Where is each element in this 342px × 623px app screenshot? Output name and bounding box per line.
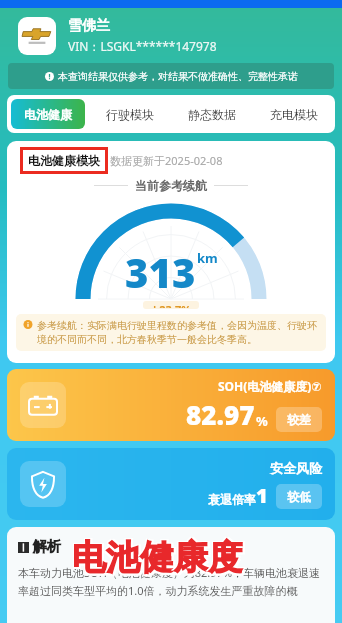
button[interactable]: 安全风险 [7,448,335,520]
staticText: 健 [140,536,174,579]
staticText: 解析 [33,538,61,556]
staticText: 池 [108,538,142,581]
staticText: 电 [71,535,105,578]
button[interactable]: SOH(电池健康度)⑦ [7,369,335,441]
staticText: ↓23.7% [150,302,192,308]
staticText: 静态数据 [188,107,236,122]
staticText: 健 [142,535,176,578]
staticText: 行驶模块 [106,107,154,122]
staticText: 池 [106,536,140,579]
staticText: 度 [210,538,244,581]
staticText: 康 [176,538,210,581]
staticText: km [197,249,218,267]
button[interactable]: 电池健康 [11,99,85,129]
staticText: 313 [125,245,196,299]
staticText: 较差 [287,412,311,427]
staticText: 康 [173,535,207,578]
button[interactable]: 充电模块 [257,99,331,129]
staticText: 度 [207,535,241,578]
staticText: 康 [174,536,208,579]
staticText: 82.97 [186,397,255,432]
staticText: 度 [210,535,244,578]
staticText: 康 [176,535,210,578]
staticText: 度 [208,536,242,579]
staticText: 数据更新于2025-02-08 [110,153,223,168]
staticText: 池 [108,535,142,578]
staticText: 电 [72,536,106,579]
staticText: 本车动力电池SOH（电池健康度）为82.97%，车辆电池衰退速率超过同类车型平均… [18,565,324,598]
staticText: 池 [105,538,139,581]
staticText: SOH(电池健康度)⑦ [218,378,322,394]
staticText: 康 [173,538,207,581]
staticText: 电池健康 [24,107,72,122]
staticText: 参考续航：实际满电行驶里程数的参考值，会因为温度、行驶环境的不同而不同，北方春秋… [37,319,319,346]
staticText: 当前参考续航 [135,178,207,193]
staticText: 1 [256,482,268,509]
staticText: 电 [74,535,108,578]
staticText: 健 [139,535,173,578]
staticText: 雪佛兰 [68,17,110,35]
staticText: 本查询结果仅供参考，对结果不做准确性、完整性承诺 [58,70,298,83]
staticText: 池 [105,535,139,578]
button[interactable]: 行驶模块 [93,99,167,129]
staticText: VIN：LSGKL******147978 [68,38,217,54]
staticText: 电 [71,538,105,581]
staticText: 充电模块 [270,107,318,122]
staticText: 度 [207,538,241,581]
staticText: % [256,412,268,430]
staticText: 衰退倍率 [208,492,256,507]
staticText: 健 [139,538,173,581]
staticText: 电 [74,538,108,581]
button[interactable]: 静态数据 [175,99,249,129]
staticText: 电池健康模块 [28,153,100,168]
staticText: 安全风险 [270,460,322,476]
staticText: 健 [142,538,176,581]
staticText: 较低 [287,489,311,504]
